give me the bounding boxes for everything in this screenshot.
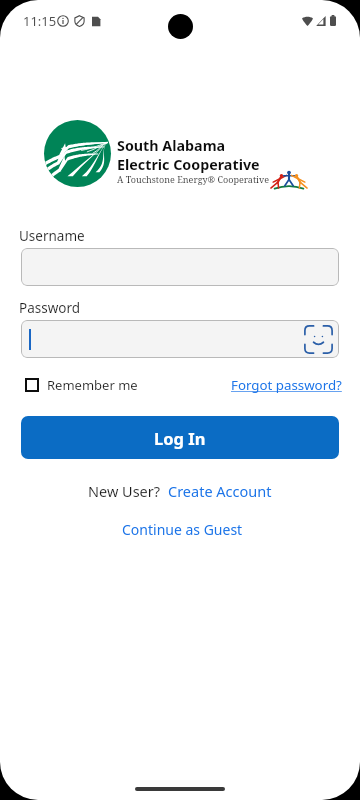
button[interactable]: Log In: [21, 416, 339, 459]
staticText: Password: [19, 299, 81, 317]
staticText: A Touchstone Energy® Cooperative: [117, 173, 269, 185]
button[interactable]: Face ID login: [304, 325, 333, 354]
button[interactable]: Face ID login: [21, 320, 339, 358]
button[interactable]: Forgot password?: [231, 376, 342, 394]
staticText: Log In: [154, 427, 206, 449]
staticText: Remember me: [47, 376, 138, 394]
staticText: New User?: [88, 481, 161, 501]
button[interactable]: Remember me: [25, 376, 138, 394]
staticText: South Alabama: [117, 136, 226, 155]
staticText: Username: [19, 227, 85, 245]
staticText: Electric Cooperative: [117, 155, 260, 174]
staticText: 11:15: [23, 12, 57, 30]
button[interactable]: Continue as Guest: [122, 520, 243, 539]
button[interactable]: Create Account: [168, 481, 272, 501]
button[interactable]: [21, 248, 339, 286]
